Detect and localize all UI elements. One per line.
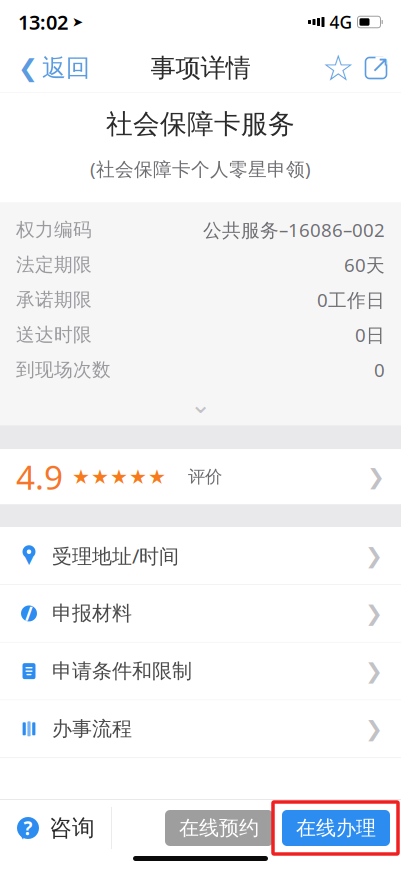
staticText: ★ [110, 465, 128, 488]
staticText: ➤ [72, 14, 83, 29]
button[interactable]: 在线预约 [165, 810, 273, 846]
staticText: ▾ [25, 551, 33, 569]
staticText: 法定期限 [16, 253, 92, 276]
staticText: 4G [329, 10, 352, 33]
staticText: ↗ [370, 51, 389, 77]
staticText: ★ [72, 465, 90, 488]
staticText: 申报材料 [52, 601, 132, 626]
staticText: ❯ [367, 465, 385, 489]
staticText: 在线预约 [179, 816, 259, 840]
staticText: 办事流程 [52, 717, 132, 741]
button[interactable]: 申请条件和限制 [0, 643, 401, 700]
staticText: ? [23, 816, 32, 840]
staticText: 社会保障卡服务 [106, 108, 295, 140]
button[interactable]: / [0, 585, 401, 642]
staticText: 权力编码 [16, 218, 92, 241]
staticText: 到现场次数 [16, 358, 111, 381]
staticText: 在线办理 [296, 816, 376, 840]
staticText: ★ [129, 465, 147, 488]
staticText: 送达时限 [16, 323, 92, 346]
staticText: 公共服务–16086–002 [203, 217, 385, 242]
staticText: ❯ [365, 717, 383, 741]
staticText: / [25, 601, 33, 626]
button[interactable]: 收藏 [319, 44, 357, 92]
button[interactable]: 办事流程 [0, 700, 401, 757]
staticText: 4.9 [16, 455, 63, 499]
staticText: ★ [148, 465, 166, 488]
staticText: ▾ [19, 826, 26, 843]
staticText: 受理地址/时间 [52, 542, 179, 569]
staticText: 承诺期限 [16, 288, 92, 311]
staticText: 0 [374, 357, 385, 382]
button[interactable]: ▾ [0, 800, 111, 856]
staticText: 0工作日 [317, 287, 385, 312]
staticText: ❯ [365, 544, 383, 568]
button[interactable]: ▾ [0, 527, 401, 584]
button[interactable]: 在线办理 [282, 810, 390, 846]
staticText: (社会保障卡个人零星申领) [90, 156, 311, 181]
staticText: ❯ [365, 659, 383, 683]
staticText: ❯ [365, 601, 383, 625]
staticText: 事项详情 [150, 52, 250, 83]
staticText: 13:02 [18, 9, 68, 35]
staticText: ☆ [322, 48, 354, 88]
staticText: ⌄ [190, 390, 211, 419]
button[interactable]: 4.9 [0, 449, 401, 504]
staticText: 0日 [355, 322, 385, 347]
staticText: ★ [91, 465, 109, 488]
staticText: 咨询 [49, 814, 95, 842]
staticText: 60天 [344, 252, 385, 277]
staticText: ❮ [18, 54, 38, 82]
staticText: 申请条件和限制 [52, 659, 192, 683]
button[interactable]: ❮ [6, 44, 102, 92]
staticText: 返回 [42, 53, 90, 83]
button[interactable]: 分享 [357, 44, 395, 92]
staticText: 评价 [188, 466, 222, 487]
